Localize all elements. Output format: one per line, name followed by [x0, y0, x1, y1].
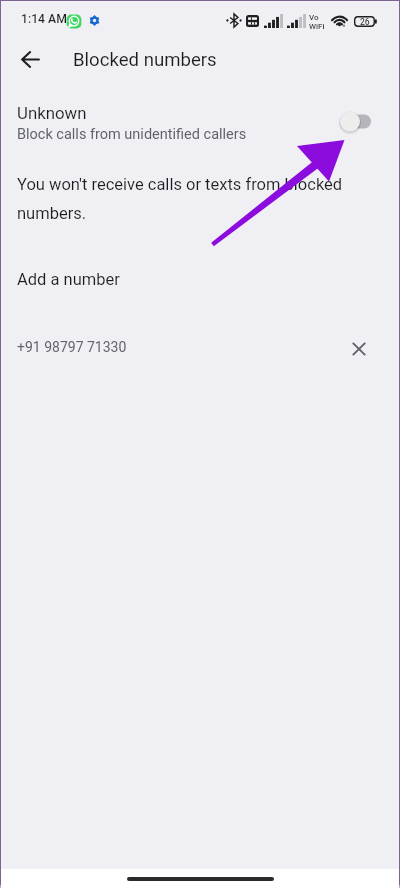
button[interactable]: Remove number [343, 333, 375, 365]
staticText: Unknown [17, 103, 87, 123]
staticText: Add a number [17, 270, 120, 289]
button[interactable]: Unknown [1, 103, 399, 151]
staticText: You won't receive calls or texts from bl… [17, 175, 347, 223]
staticText: 1:14 AM [21, 12, 67, 26]
button[interactable]: Add a number [1, 259, 399, 299]
staticText: Block calls from unidentified callers [17, 126, 247, 143]
button[interactable]: +91 98797 71330 [1, 326, 399, 368]
staticText: WiFi [309, 22, 325, 31]
button[interactable]: Back [12, 41, 48, 77]
staticText: 26 [360, 17, 370, 27]
button[interactable]: Block calls from unidentified callers [333, 103, 379, 140]
staticText: Blocked numbers [73, 49, 217, 71]
staticText: +91 98797 71330 [17, 339, 127, 355]
staticText: Vo [309, 13, 319, 22]
